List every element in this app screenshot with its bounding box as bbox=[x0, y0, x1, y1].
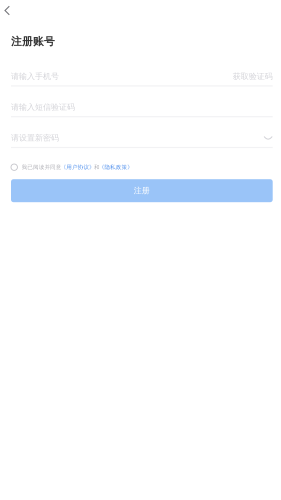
staticText: 获取验证码 bbox=[233, 71, 273, 81]
button[interactable]: Back bbox=[0, 0, 20, 21]
staticText: 《隐私政策》 bbox=[99, 164, 133, 171]
button[interactable]: Agree to the user agreement and privacy … bbox=[0, 161, 23, 174]
staticText: 注册账号 bbox=[11, 35, 55, 48]
button[interactable]: 注册 bbox=[11, 179, 273, 202]
staticText: 注册 bbox=[134, 186, 150, 196]
button[interactable]: Show password bbox=[264, 136, 273, 140]
staticText: 我已阅读并同意 bbox=[22, 164, 62, 171]
staticText: 和 bbox=[94, 164, 100, 171]
button[interactable]: 《隐私政策》 bbox=[99, 164, 133, 171]
staticText: 请输入短信验证码 bbox=[11, 102, 75, 112]
button[interactable]: 《用户协议》 bbox=[61, 164, 95, 171]
button[interactable]: 获取验证码 bbox=[233, 71, 273, 81]
staticText: 请设置新密码 bbox=[11, 133, 59, 143]
staticText: 请输入手机号 bbox=[11, 71, 59, 81]
staticText: 《用户协议》 bbox=[61, 164, 95, 171]
